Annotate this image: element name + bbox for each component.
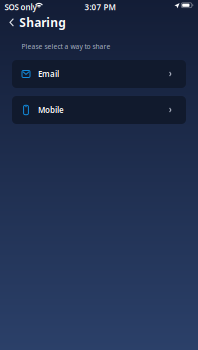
button[interactable]: Mobile (12, 96, 186, 124)
staticText: Email (38, 69, 59, 79)
staticText: SOS only (4, 2, 36, 12)
button[interactable]: Email (12, 60, 186, 88)
staticText: Sharing (19, 14, 66, 30)
button[interactable]: Back (9, 14, 93, 30)
staticText: Mobile (38, 105, 64, 115)
staticText: Please select a way to share (21, 42, 110, 51)
staticText: 3:07 PM (84, 2, 115, 12)
